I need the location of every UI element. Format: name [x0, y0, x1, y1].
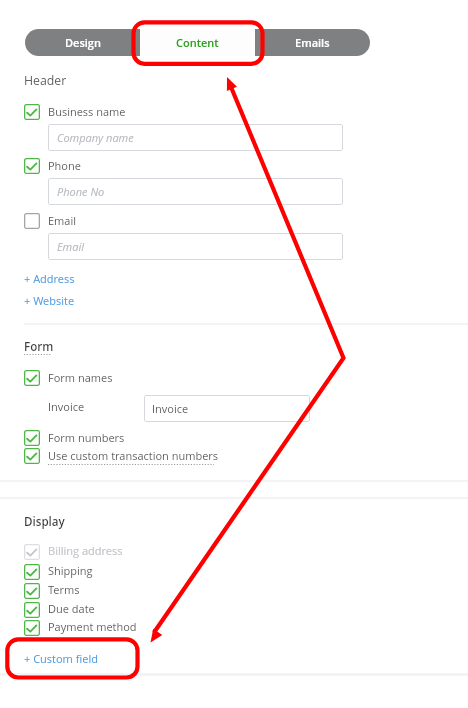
- staticText: Form names: [48, 370, 113, 385]
- staticText: Design: [65, 35, 101, 50]
- button[interactable]: Invoice: [144, 395, 310, 422]
- button[interactable]: Design: [25, 29, 140, 56]
- staticText: Content: [176, 35, 219, 50]
- staticText: Billing address: [48, 543, 123, 558]
- staticText: + Address: [24, 271, 75, 286]
- button[interactable]: Checked: [24, 583, 40, 599]
- button[interactable]: + Address: [24, 271, 75, 286]
- button[interactable]: + Custom field: [24, 651, 98, 666]
- button[interactable]: Checked: [24, 602, 40, 618]
- staticText: Form numbers: [48, 430, 125, 445]
- staticText: Emails: [295, 35, 330, 50]
- button[interactable]: Company name: [48, 124, 343, 151]
- staticText: Due date: [48, 601, 95, 616]
- button[interactable]: + Website: [24, 293, 75, 308]
- staticText: + Website: [24, 293, 75, 308]
- staticText: Company name: [57, 130, 134, 145]
- button[interactable]: Checked: [24, 448, 40, 464]
- button[interactable]: Content: [140, 29, 255, 56]
- button[interactable]: Checked: [24, 620, 40, 636]
- button[interactable]: Checked: [24, 430, 40, 446]
- staticText: Email: [57, 239, 85, 254]
- staticText: Shipping: [48, 563, 93, 578]
- staticText: Header: [24, 72, 67, 89]
- staticText: Invoice: [48, 399, 85, 414]
- button[interactable]: Unchecked: [24, 213, 40, 229]
- button[interactable]: Checked: [24, 158, 40, 174]
- button[interactable]: Emails: [255, 29, 370, 56]
- staticText: Payment method: [48, 619, 137, 634]
- staticText: Display: [24, 514, 65, 530]
- button[interactable]: Checked: [24, 104, 40, 120]
- staticText: + Custom field: [24, 651, 98, 666]
- button[interactable]: Phone No: [48, 178, 343, 205]
- button[interactable]: Checked: [24, 370, 40, 386]
- staticText: Terms: [48, 582, 80, 597]
- button[interactable]: Email: [48, 233, 343, 260]
- staticText: Email: [48, 213, 77, 228]
- button[interactable]: Checked: [24, 564, 40, 580]
- staticText: Use custom transaction numbers: [48, 448, 219, 463]
- staticText: Phone No: [57, 184, 105, 199]
- staticText: Form: [24, 339, 54, 355]
- staticText: Business name: [48, 104, 126, 119]
- button[interactable]: Checked: [24, 544, 40, 560]
- staticText: Invoice: [152, 401, 189, 416]
- staticText: Phone: [48, 158, 81, 173]
